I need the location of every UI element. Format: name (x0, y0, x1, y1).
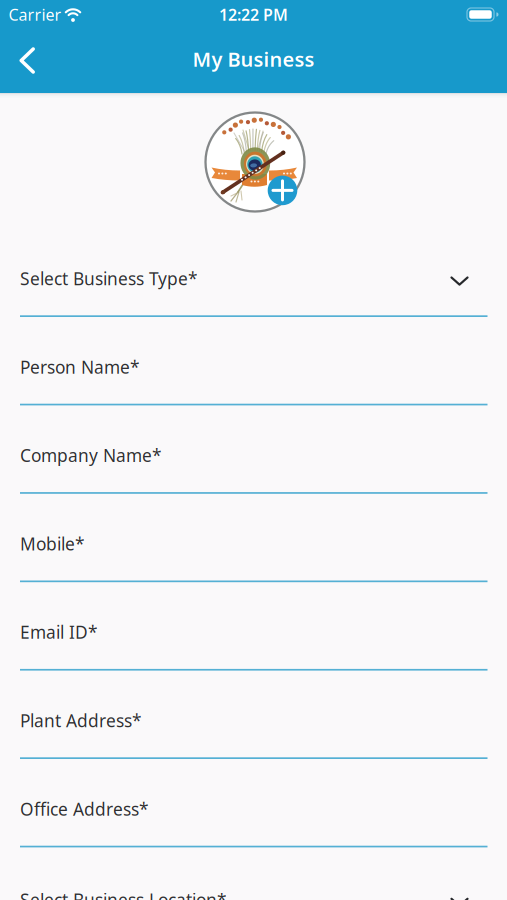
button[interactable]: Office Address* (20, 794, 487, 847)
button[interactable]: Company Name* (20, 441, 487, 494)
button[interactable]: Select Business Type* (20, 264, 487, 317)
staticText: Select Business Location* (20, 888, 227, 900)
staticText: Company Name* (20, 444, 162, 467)
button[interactable]: Select Business Location* (20, 885, 487, 900)
button[interactable]: Person Name* (20, 352, 487, 405)
button[interactable]: Email ID* (20, 618, 487, 671)
button[interactable] (0, 46, 44, 75)
button[interactable] (267, 175, 298, 206)
staticText: Person Name* (20, 355, 140, 378)
staticText: Mobile* (20, 532, 85, 555)
staticText: My Business (192, 46, 314, 72)
staticText: Plant Address* (20, 709, 142, 732)
button[interactable]: Plant Address* (20, 706, 487, 759)
button[interactable]: Mobile* (20, 529, 487, 582)
staticText: Email ID* (20, 621, 98, 644)
staticText: Office Address* (20, 797, 149, 820)
staticText: 12:22 PM (219, 4, 288, 25)
button[interactable] (195, 102, 315, 222)
staticText: Carrier (8, 4, 61, 25)
staticText: Select Business Type* (20, 267, 198, 290)
